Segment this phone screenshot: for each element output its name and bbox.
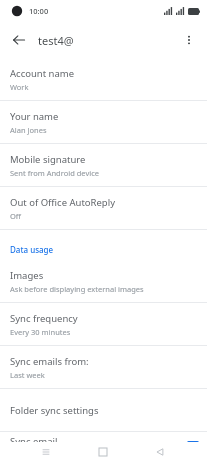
staticText: 10:00 bbox=[29, 6, 49, 16]
button[interactable]: Sync email enabled bbox=[187, 441, 199, 453]
staticText: Last week bbox=[10, 370, 45, 380]
button[interactable]: Folder sync settings bbox=[0, 389, 207, 431]
button[interactable]: Account name bbox=[0, 58, 207, 100]
button[interactable]: Mobile signature bbox=[0, 144, 207, 186]
button[interactable]: Back bbox=[6, 27, 32, 53]
staticText: Mobile signature bbox=[10, 153, 86, 166]
staticText: Data usage bbox=[10, 244, 54, 255]
button[interactable]: Sync frequency bbox=[0, 303, 207, 345]
staticText: test4@ bbox=[38, 33, 74, 48]
staticText: Work bbox=[10, 82, 29, 92]
staticText: Out of Office AutoReply bbox=[10, 196, 115, 209]
staticText: Sync frequency bbox=[10, 312, 78, 325]
staticText: Ask before displaying external images bbox=[10, 284, 144, 294]
staticText: Sync emails from: bbox=[10, 355, 89, 368]
staticText: Folder sync settings bbox=[10, 404, 99, 417]
staticText: Sync email for this account bbox=[10, 450, 105, 460]
staticText: Sent from Android device bbox=[10, 168, 99, 178]
button[interactable]: Recents bbox=[36, 442, 56, 462]
button[interactable]: Sync email bbox=[0, 432, 207, 462]
button[interactable]: Images bbox=[0, 260, 207, 302]
button[interactable]: Out of Office AutoReply bbox=[0, 187, 207, 229]
button[interactable]: Sync emails from: bbox=[0, 346, 207, 388]
button[interactable]: Home bbox=[93, 442, 113, 462]
button[interactable]: Your name bbox=[0, 101, 207, 143]
staticText: Alan Jones bbox=[10, 125, 47, 135]
staticText: Sync email bbox=[10, 435, 58, 448]
staticText: Every 30 minutes bbox=[10, 327, 71, 337]
staticText: Your name bbox=[10, 110, 59, 123]
staticText: Account name bbox=[10, 67, 75, 80]
button[interactable]: Back bbox=[150, 442, 170, 462]
staticText: Off bbox=[10, 211, 22, 221]
button[interactable]: More options bbox=[176, 27, 202, 53]
staticText: Images bbox=[10, 269, 44, 282]
